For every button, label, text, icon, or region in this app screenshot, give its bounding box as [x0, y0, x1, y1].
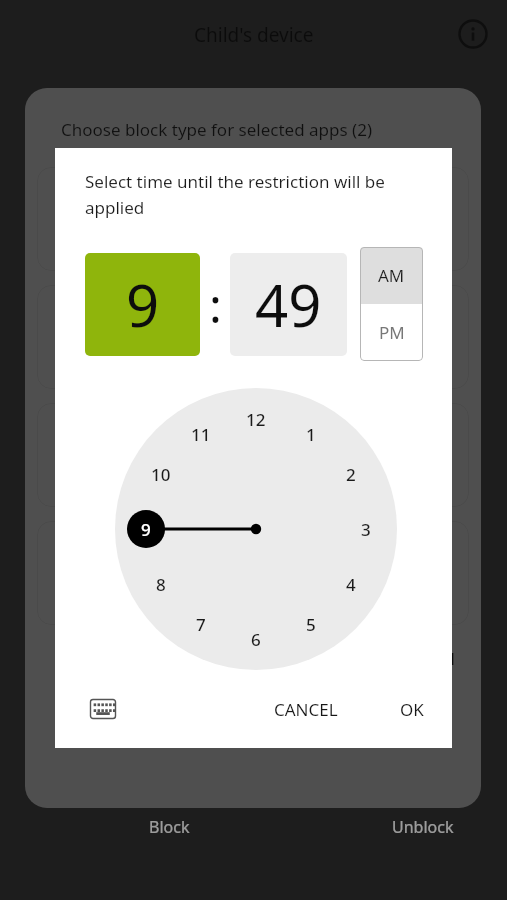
button[interactable]: Unblock	[338, 770, 507, 838]
button[interactable]: 4	[334, 567, 368, 601]
button[interactable]: 1	[294, 417, 328, 451]
staticText: 12	[246, 408, 266, 431]
button[interactable]: PM	[360, 304, 423, 360]
staticText: Child's device	[194, 22, 314, 48]
staticText: 7	[196, 613, 206, 636]
button[interactable]: 12	[239, 402, 273, 436]
staticText: Cancel	[402, 647, 455, 670]
staticText: :	[209, 272, 222, 337]
staticText: OK	[400, 698, 424, 721]
staticText: 6	[251, 628, 261, 651]
button[interactable]: 6	[239, 622, 273, 656]
button[interactable]: 49	[230, 253, 347, 356]
button[interactable]: OK	[386, 688, 438, 731]
button[interactable]: 9	[85, 253, 200, 356]
staticText: PM	[379, 321, 405, 344]
staticText: 2	[346, 463, 356, 486]
staticText: Unblock	[392, 816, 454, 838]
button[interactable]	[37, 285, 469, 389]
button[interactable]: CANCEL	[260, 688, 352, 731]
button[interactable]: Cancel	[396, 641, 461, 676]
staticText: 8	[156, 573, 166, 596]
button[interactable]: Child's device	[186, 18, 322, 52]
staticText: CANCEL	[274, 698, 338, 721]
staticText: 9	[141, 518, 151, 541]
staticText: 9	[126, 265, 160, 344]
staticText: Choose block type for selected apps (2)	[61, 118, 372, 141]
button[interactable]: Information	[451, 12, 495, 56]
staticText: 10	[151, 463, 171, 486]
staticText: 3	[361, 518, 371, 541]
button[interactable]: 7	[184, 607, 218, 641]
staticText: AM	[378, 264, 405, 287]
staticText: Block	[149, 816, 190, 838]
button[interactable]: Block	[84, 770, 254, 838]
button[interactable]: AM	[360, 247, 423, 304]
button[interactable]	[37, 167, 469, 271]
button[interactable]: 9	[129, 512, 163, 546]
staticText: 49	[255, 265, 322, 344]
button[interactable]: 8	[144, 567, 178, 601]
button[interactable]: 5	[294, 607, 328, 641]
staticText: 1	[306, 423, 316, 446]
staticText: 11	[191, 423, 211, 446]
staticText: Select time until the restriction will b…	[85, 170, 426, 219]
button[interactable]: Switch to keyboard input	[85, 691, 121, 727]
button[interactable]: 11	[184, 417, 218, 451]
button[interactable]: 3	[349, 512, 383, 546]
staticText: 5	[306, 613, 316, 636]
staticText: 4	[346, 573, 356, 596]
button[interactable]: 10	[144, 457, 178, 491]
button[interactable]	[37, 521, 469, 625]
button[interactable]	[37, 403, 469, 507]
button[interactable]: 2	[334, 457, 368, 491]
